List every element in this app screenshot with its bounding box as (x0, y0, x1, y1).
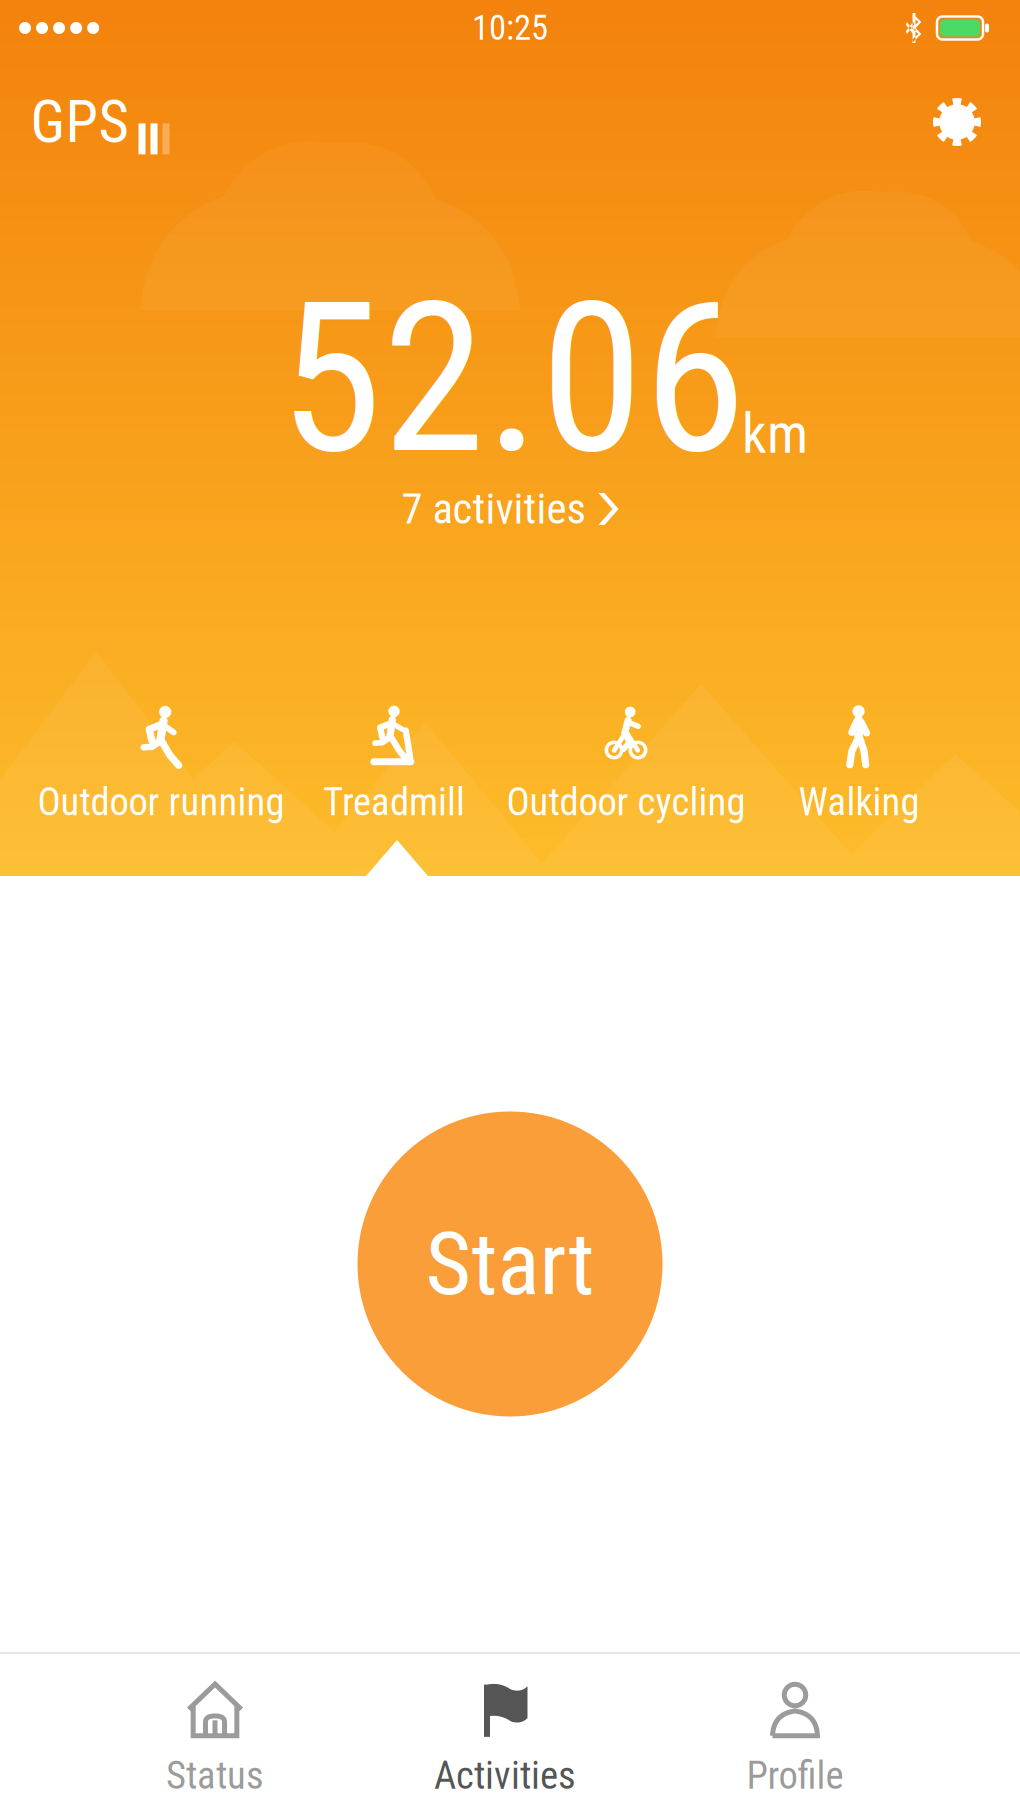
button[interactable]: Settings (917, 82, 997, 162)
button[interactable]: Profile (706, 1670, 883, 1810)
button[interactable]: Outdoor running (29, 705, 292, 825)
staticText: Status (166, 1753, 264, 1798)
staticText: 10:25 (472, 8, 548, 48)
button[interactable]: 7 activities (385, 478, 634, 540)
staticText: Outdoor cycling (506, 779, 745, 825)
staticText: Start (425, 1212, 594, 1315)
staticText: GPS (30, 88, 128, 156)
button[interactable]: Treadmill (315, 705, 473, 825)
staticText: km (742, 402, 808, 466)
button[interactable]: Status (126, 1670, 304, 1810)
staticText: Profile (746, 1753, 843, 1798)
staticText: 52.06 (279, 257, 746, 501)
staticText: Treadmill (323, 779, 465, 825)
button[interactable]: Activities (394, 1670, 616, 1810)
button[interactable]: Walking (790, 705, 927, 825)
staticText: Activities (434, 1753, 576, 1798)
button[interactable]: Start (357, 1111, 662, 1416)
staticText: 7 activities (401, 484, 585, 534)
staticText: Walking (798, 779, 919, 825)
staticText: Outdoor running (37, 779, 284, 825)
button[interactable]: Outdoor cycling (498, 705, 753, 825)
